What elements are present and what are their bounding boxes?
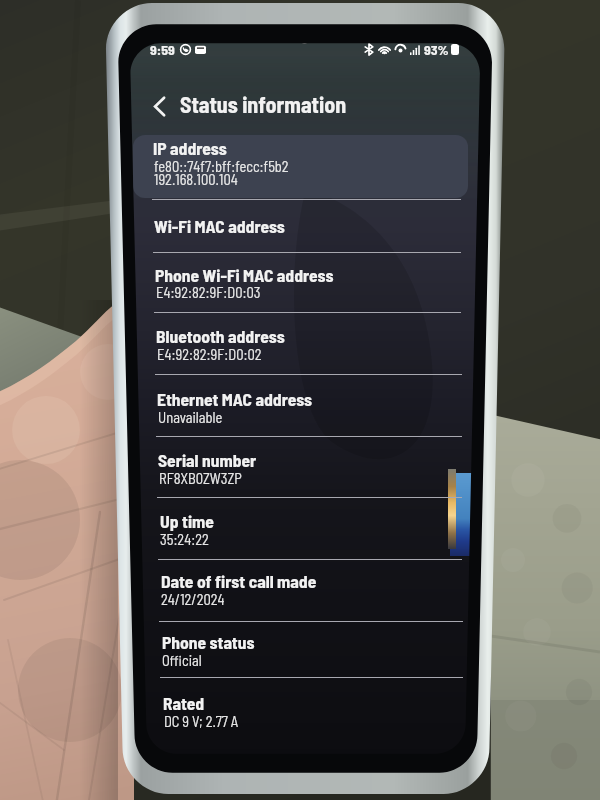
staticText: Phone Wi-Fi MAC address [155, 264, 334, 285]
button[interactable] [126, 621, 486, 677]
staticText: DC 9 V; 2.77 A [164, 712, 239, 729]
button[interactable] [126, 128, 486, 199]
staticText: Phone status [162, 631, 255, 652]
staticText: Up time [160, 510, 214, 531]
button[interactable] [126, 374, 486, 436]
staticText: 24/12/2024 [161, 590, 225, 607]
staticText: fe80::74f7:bff:fecc:f5b2 [154, 157, 289, 174]
staticText: Bluetooth address [156, 325, 285, 346]
staticText: 9:59 [150, 41, 175, 57]
staticText: E4:92:82:9F:D0:03 [156, 283, 261, 300]
staticText: E4:92:82:9F:D0:02 [157, 345, 262, 362]
staticText: Official [162, 651, 202, 668]
button[interactable] [126, 312, 486, 374]
button[interactable] [126, 559, 486, 621]
staticText: RF8XB0ZW3ZP [159, 469, 242, 486]
staticText: Serial number [158, 449, 257, 470]
staticText: Ethernet MAC address [157, 388, 313, 409]
staticText: IP address [153, 137, 227, 158]
button[interactable] [126, 497, 486, 559]
staticText: Rated [163, 692, 205, 713]
button[interactable]: Back [143, 87, 175, 125]
staticText: Wi-Fi MAC address [154, 215, 285, 236]
staticText: Unavailable [158, 408, 223, 425]
button[interactable] [126, 677, 486, 733]
button[interactable] [126, 199, 486, 252]
button[interactable] [126, 252, 486, 312]
button[interactable] [126, 436, 486, 497]
staticText: Date of first call made [161, 570, 317, 591]
staticText: 93% [424, 41, 449, 57]
staticText: 35:24:22 [160, 530, 209, 547]
staticText: 192.168.100.104 [154, 170, 238, 187]
staticText: Status information [180, 91, 347, 117]
